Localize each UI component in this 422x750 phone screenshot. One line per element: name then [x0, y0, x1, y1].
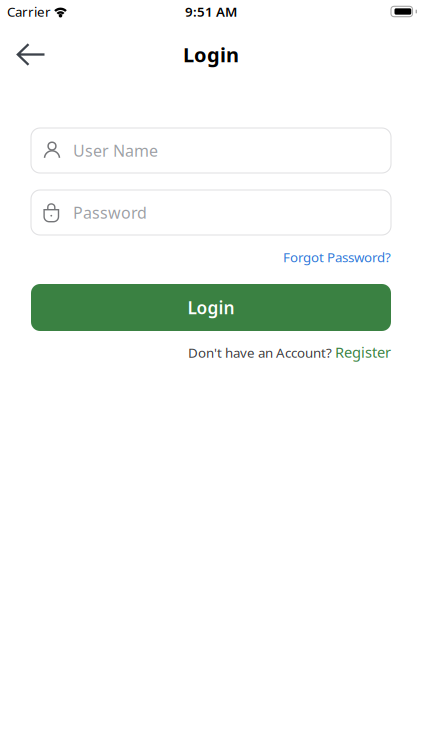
- staticText: Login: [183, 41, 239, 68]
- staticText: User Name: [73, 140, 158, 161]
- button[interactable]: Login: [31, 284, 391, 331]
- button[interactable]: Register: [335, 342, 391, 362]
- staticText: Login: [187, 296, 234, 319]
- staticText: Don't have an Account?: [188, 344, 332, 361]
- staticText: Password: [73, 202, 147, 223]
- staticText: Carrier: [7, 3, 51, 20]
- staticText: Register: [335, 342, 391, 362]
- button[interactable]: Forgot Password?: [283, 248, 391, 266]
- staticText: 9:51 AM: [185, 3, 237, 20]
- button[interactable]: User Name: [31, 128, 391, 173]
- button[interactable]: Password: [31, 190, 391, 235]
- staticText: Forgot Password?: [283, 248, 391, 266]
- button[interactable]: Back: [0, 30, 45, 79]
